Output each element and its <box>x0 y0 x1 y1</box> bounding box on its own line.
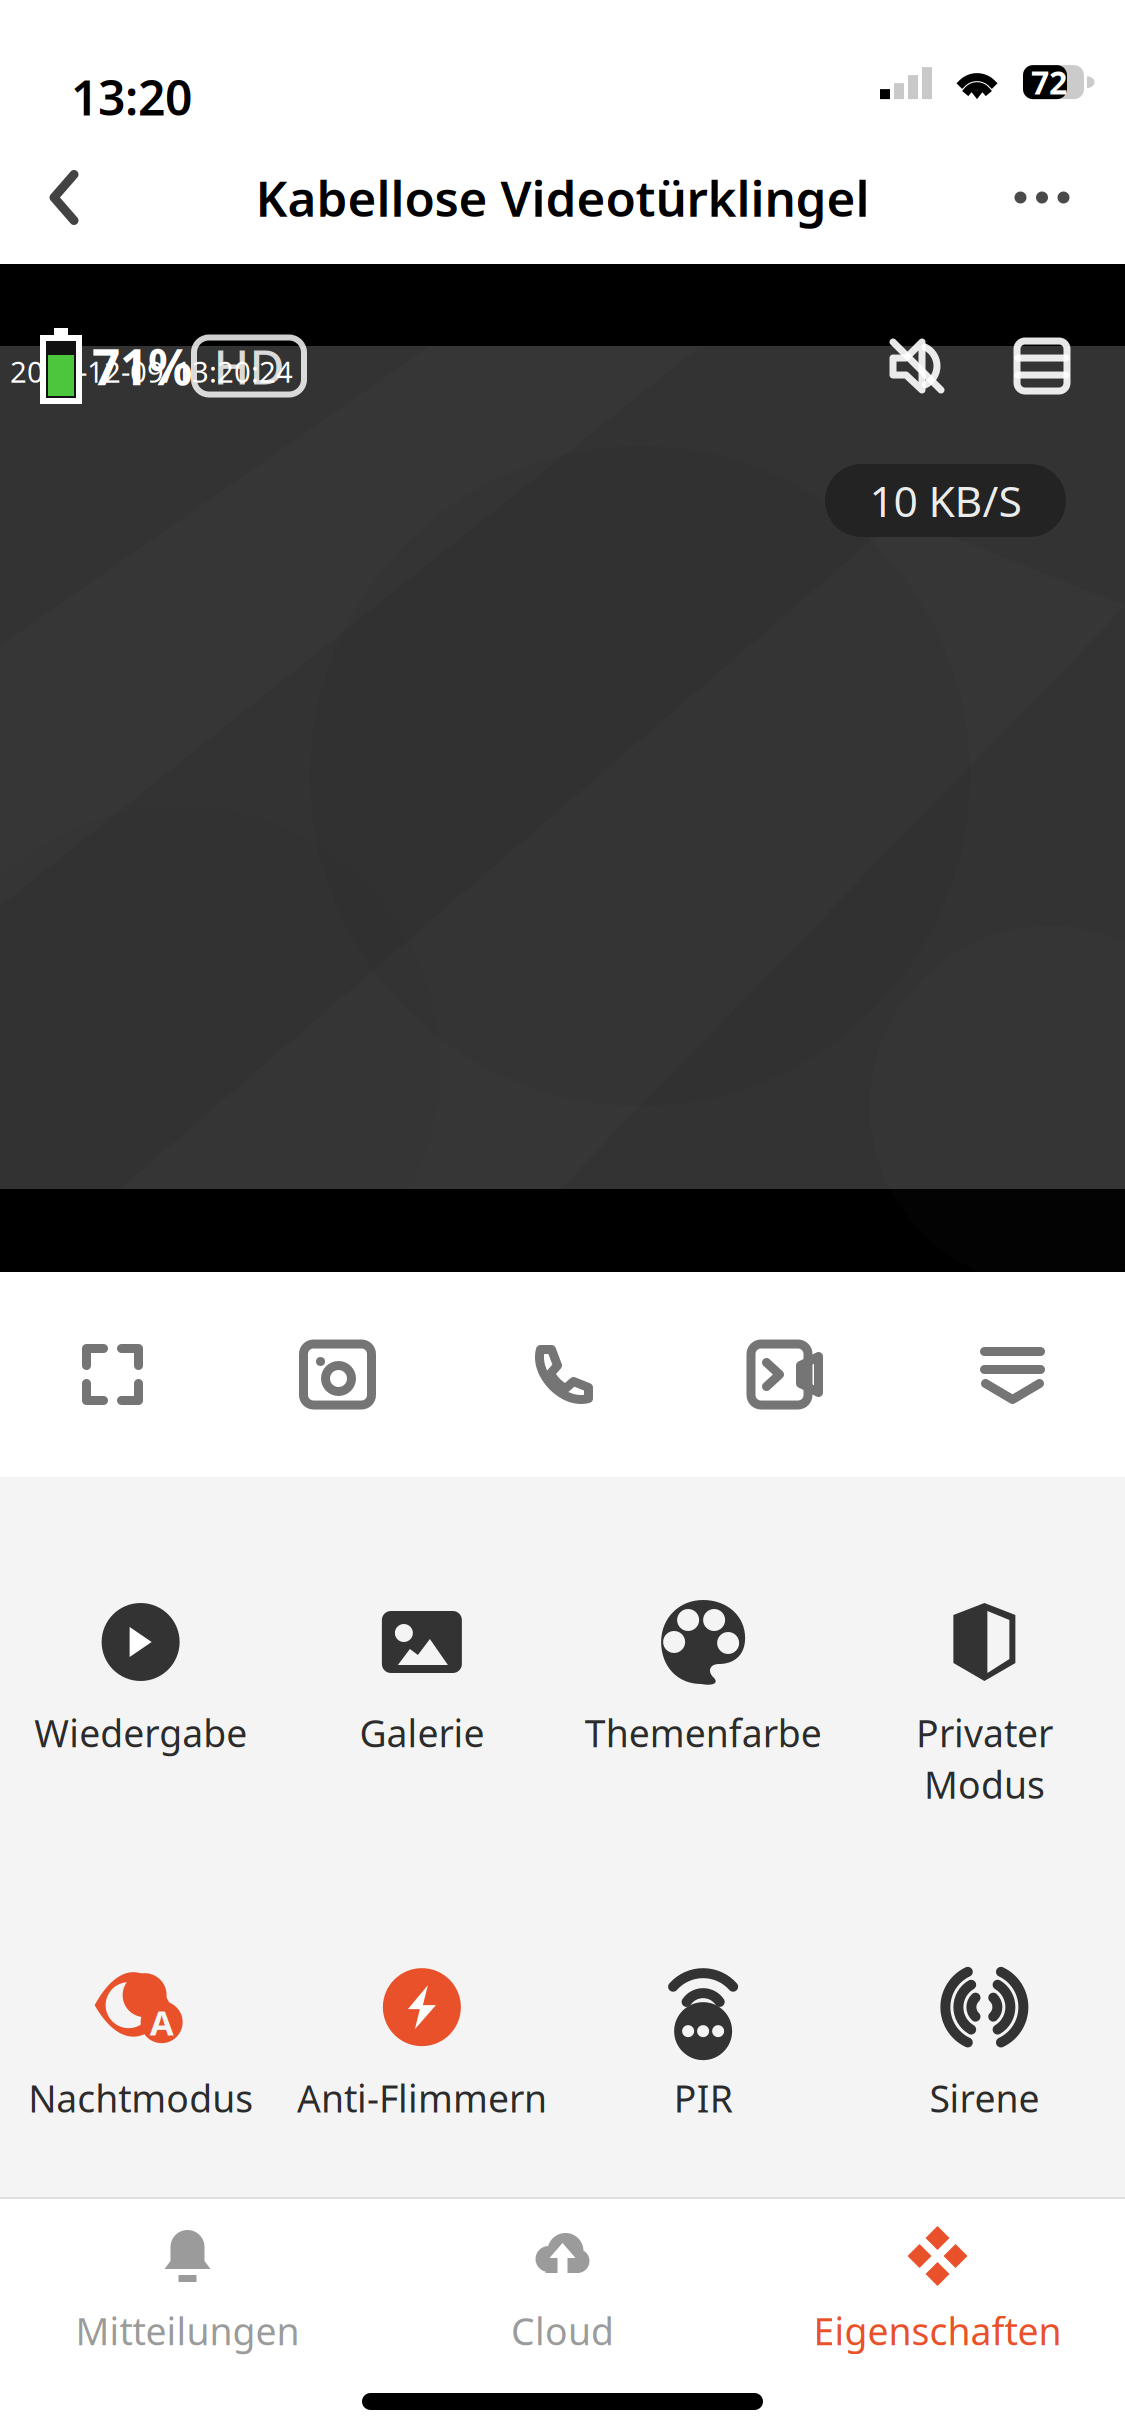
staticText: 72 <box>1031 61 1067 103</box>
staticText: HD <box>213 334 284 398</box>
button[interactable]: Wiedergabe <box>0 1596 281 1817</box>
staticText: Wiedergabe <box>34 1708 247 1758</box>
button[interactable]: Anti-Flimmern <box>281 1961 562 2171</box>
button[interactable]: Mehr <box>987 142 1097 252</box>
button[interactable]: Mitteilungen <box>0 2194 375 2364</box>
staticText: Sirene <box>929 2073 1039 2123</box>
staticText: 13:20 <box>71 65 192 129</box>
staticText: Nachtmodus <box>28 2073 253 2123</box>
button[interactable]: Zurück <box>9 142 119 252</box>
staticText: 71% <box>92 333 192 399</box>
staticText: Mitteilungen <box>75 2306 299 2356</box>
staticText: Anti-Flimmern <box>297 2073 547 2123</box>
staticText: Themenfarbe <box>585 1708 822 1758</box>
button[interactable]: Sirene <box>844 1961 1125 2171</box>
staticText: A <box>150 1999 174 2045</box>
staticText: 10 KB/S <box>869 472 1021 529</box>
button[interactable]: Eigenschaften <box>750 2194 1125 2364</box>
staticText: Privater <box>916 1708 1053 1758</box>
button[interactable]: Themenfarbe <box>562 1596 844 1817</box>
staticText: PIR <box>674 2073 733 2123</box>
button[interactable]: Privater <box>844 1596 1125 1817</box>
button[interactable]: Sprechen <box>450 1289 675 1459</box>
button[interactable]: Vollbild <box>0 1289 225 1459</box>
button[interactable]: PIR <box>562 1961 844 2171</box>
staticText: Galerie <box>359 1708 484 1758</box>
staticText: Eigenschaften <box>813 2306 1061 2356</box>
staticText: Kabellose Videotürklingel <box>255 165 869 230</box>
button[interactable]: Galerie <box>281 1596 562 1817</box>
button[interactable]: Aufnahme <box>675 1289 900 1459</box>
staticText: Modus <box>924 1760 1045 1809</box>
button[interactable]: A <box>0 1961 281 2171</box>
button[interactable]: Ansicht <box>1002 326 1082 406</box>
button[interactable]: Cloud <box>375 2194 750 2364</box>
button[interactable]: Mehr <box>900 1289 1125 1459</box>
button[interactable]: Schnappschuss <box>225 1289 450 1459</box>
staticText: 2023-12-09/13:20:24 <box>10 352 293 391</box>
staticText: Cloud <box>511 2306 614 2356</box>
button[interactable]: Stummschalten <box>876 326 960 406</box>
